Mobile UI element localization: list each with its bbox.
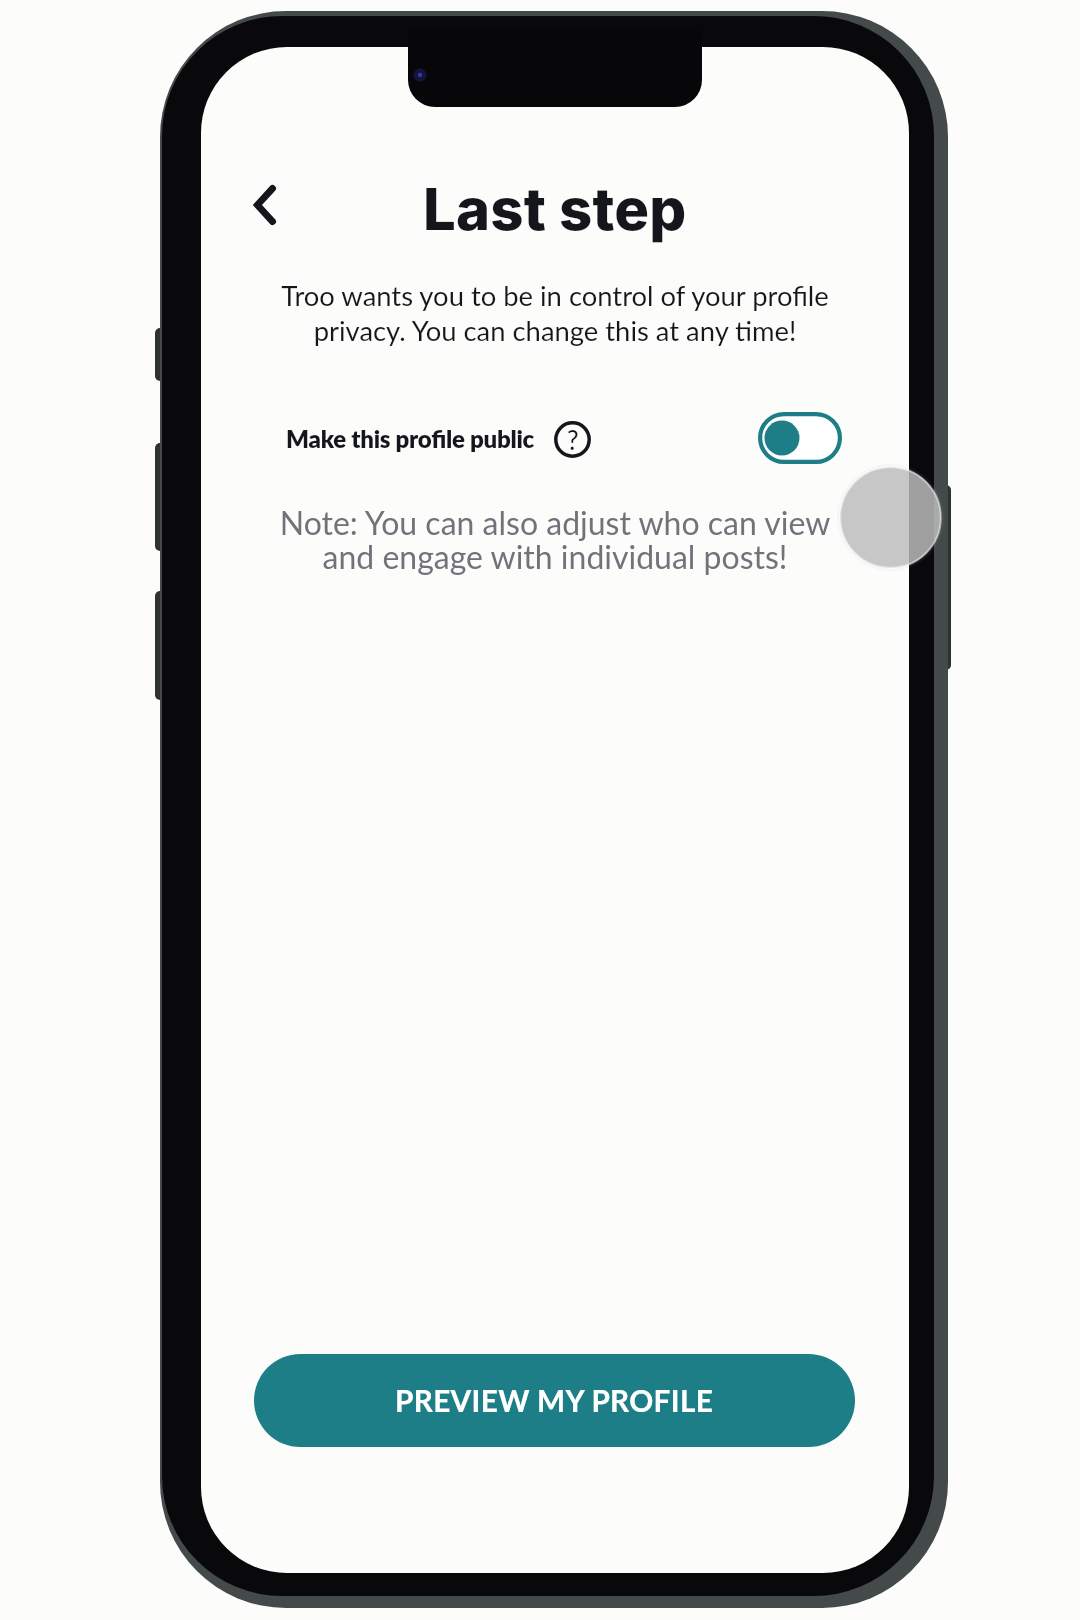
button[interactable]: Make this profile public <box>286 409 534 467</box>
button[interactable]: Back <box>234 174 296 236</box>
button[interactable]: PREVIEW MY PROFILE <box>254 1354 855 1447</box>
staticText: PREVIEW MY PROFILE <box>395 1383 714 1419</box>
staticText: Last step <box>423 174 687 244</box>
button[interactable]: Make this profile public toggle <box>758 412 842 464</box>
staticText: Troo wants you to be in control of your … <box>201 279 909 347</box>
staticText: Make this profile public <box>286 424 534 453</box>
staticText: ? <box>567 424 579 455</box>
staticText: Note: You can also adjust who can view a… <box>201 503 909 575</box>
button[interactable]: What does making my profile public mean? <box>554 421 591 458</box>
